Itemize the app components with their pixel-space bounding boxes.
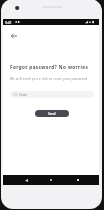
staticText: Email bbox=[19, 93, 27, 97]
button[interactable]: Home bbox=[46, 175, 56, 185]
staticText: Send bbox=[48, 112, 56, 116]
button[interactable]: Email bbox=[10, 91, 94, 98]
staticText: Forgot password? No worries bbox=[10, 64, 89, 70]
button[interactable]: Back bbox=[21, 175, 31, 185]
button[interactable]: Back bbox=[8, 30, 19, 41]
staticText: 9:41 bbox=[5, 20, 12, 25]
staticText: We will send you a link to reset your pa… bbox=[10, 77, 88, 81]
button[interactable]: Send bbox=[35, 110, 69, 117]
button[interactable]: Recents bbox=[73, 175, 83, 185]
